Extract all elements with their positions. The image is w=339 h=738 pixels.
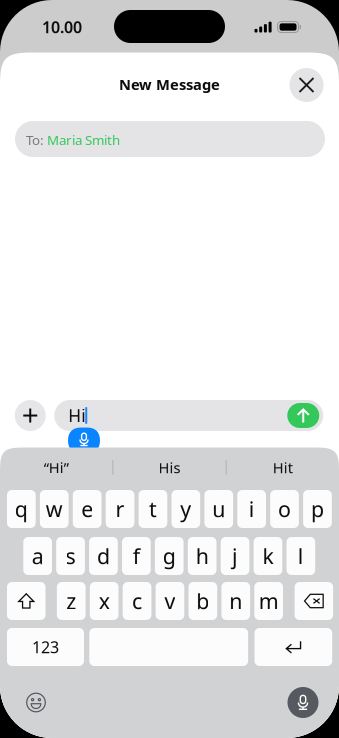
staticText: Hit xyxy=(273,458,293,477)
button[interactable]: s xyxy=(56,537,85,575)
staticText: h xyxy=(196,542,209,570)
button[interactable]: y xyxy=(171,490,200,528)
staticText: e xyxy=(81,495,93,523)
button[interactable]: Dictation xyxy=(67,426,101,454)
button[interactable]: o xyxy=(270,490,299,528)
button[interactable]: x xyxy=(90,582,118,620)
button[interactable]: His xyxy=(113,447,226,487)
staticText: p xyxy=(311,495,324,523)
button[interactable]: q xyxy=(7,490,36,528)
button[interactable]: Add attachment xyxy=(15,400,46,431)
button[interactable]: z xyxy=(57,582,86,620)
staticText: q xyxy=(15,495,28,523)
button[interactable]: k xyxy=(254,537,282,575)
staticText: k xyxy=(262,542,273,570)
button[interactable]: d xyxy=(89,537,118,575)
staticText: l xyxy=(298,542,304,570)
staticText: z xyxy=(66,587,76,615)
staticText: m xyxy=(259,587,279,615)
button[interactable]: “Hi” xyxy=(0,447,112,487)
button[interactable]: c xyxy=(123,582,151,620)
button[interactable]: Return xyxy=(254,628,332,666)
button[interactable]: 123 xyxy=(7,628,84,666)
staticText: Hi xyxy=(68,404,85,427)
staticText: f xyxy=(133,542,140,570)
button[interactable]: Hit xyxy=(227,447,339,487)
button[interactable]: g xyxy=(155,537,184,575)
staticText: j xyxy=(232,542,238,570)
staticText: w xyxy=(46,495,63,523)
button[interactable]: j xyxy=(221,537,249,575)
button[interactable]: Send xyxy=(287,403,319,428)
staticText: His xyxy=(158,458,180,477)
staticText: u xyxy=(212,495,225,523)
staticText: v xyxy=(164,587,175,615)
button[interactable]: l xyxy=(286,537,315,575)
button[interactable]: i xyxy=(237,490,266,528)
button[interactable]: v xyxy=(156,582,184,620)
button[interactable]: b xyxy=(188,582,217,620)
button[interactable]: n xyxy=(221,582,250,620)
button[interactable]: f xyxy=(122,537,151,575)
button[interactable]: Delete xyxy=(295,582,333,620)
staticText: New Message xyxy=(119,75,220,94)
staticText: r xyxy=(115,495,124,523)
staticText: a xyxy=(32,542,44,570)
button[interactable]: m xyxy=(254,582,283,620)
staticText: b xyxy=(196,587,209,615)
staticText: i xyxy=(249,495,255,523)
staticText: t xyxy=(149,495,157,523)
staticText: o xyxy=(278,495,291,523)
staticText: n xyxy=(229,587,242,615)
staticText: s xyxy=(65,542,75,570)
button[interactable]: u xyxy=(204,490,233,528)
staticText: d xyxy=(97,542,110,570)
button[interactable]: e xyxy=(73,490,101,528)
staticText: 10.00 xyxy=(42,16,82,38)
staticText: c xyxy=(132,587,142,615)
button[interactable]: r xyxy=(106,490,134,528)
staticText: g xyxy=(163,542,176,570)
button[interactable]: p xyxy=(303,490,332,528)
staticText: To: xyxy=(26,131,47,149)
button[interactable]: a xyxy=(23,537,52,575)
button[interactable]: h xyxy=(188,537,216,575)
staticText: y xyxy=(180,495,191,523)
button[interactable]: Emoji keyboard xyxy=(20,686,52,718)
button[interactable]: Close xyxy=(286,65,326,105)
staticText: x xyxy=(99,587,110,615)
staticText: 123 xyxy=(32,636,59,658)
button[interactable]: w xyxy=(40,490,69,528)
button[interactable]: Shift xyxy=(7,582,45,620)
button[interactable]: t xyxy=(139,490,167,528)
staticText: Maria Smith xyxy=(47,131,120,149)
button[interactable]: Dictate xyxy=(287,686,319,718)
staticText: “Hi” xyxy=(44,458,69,477)
